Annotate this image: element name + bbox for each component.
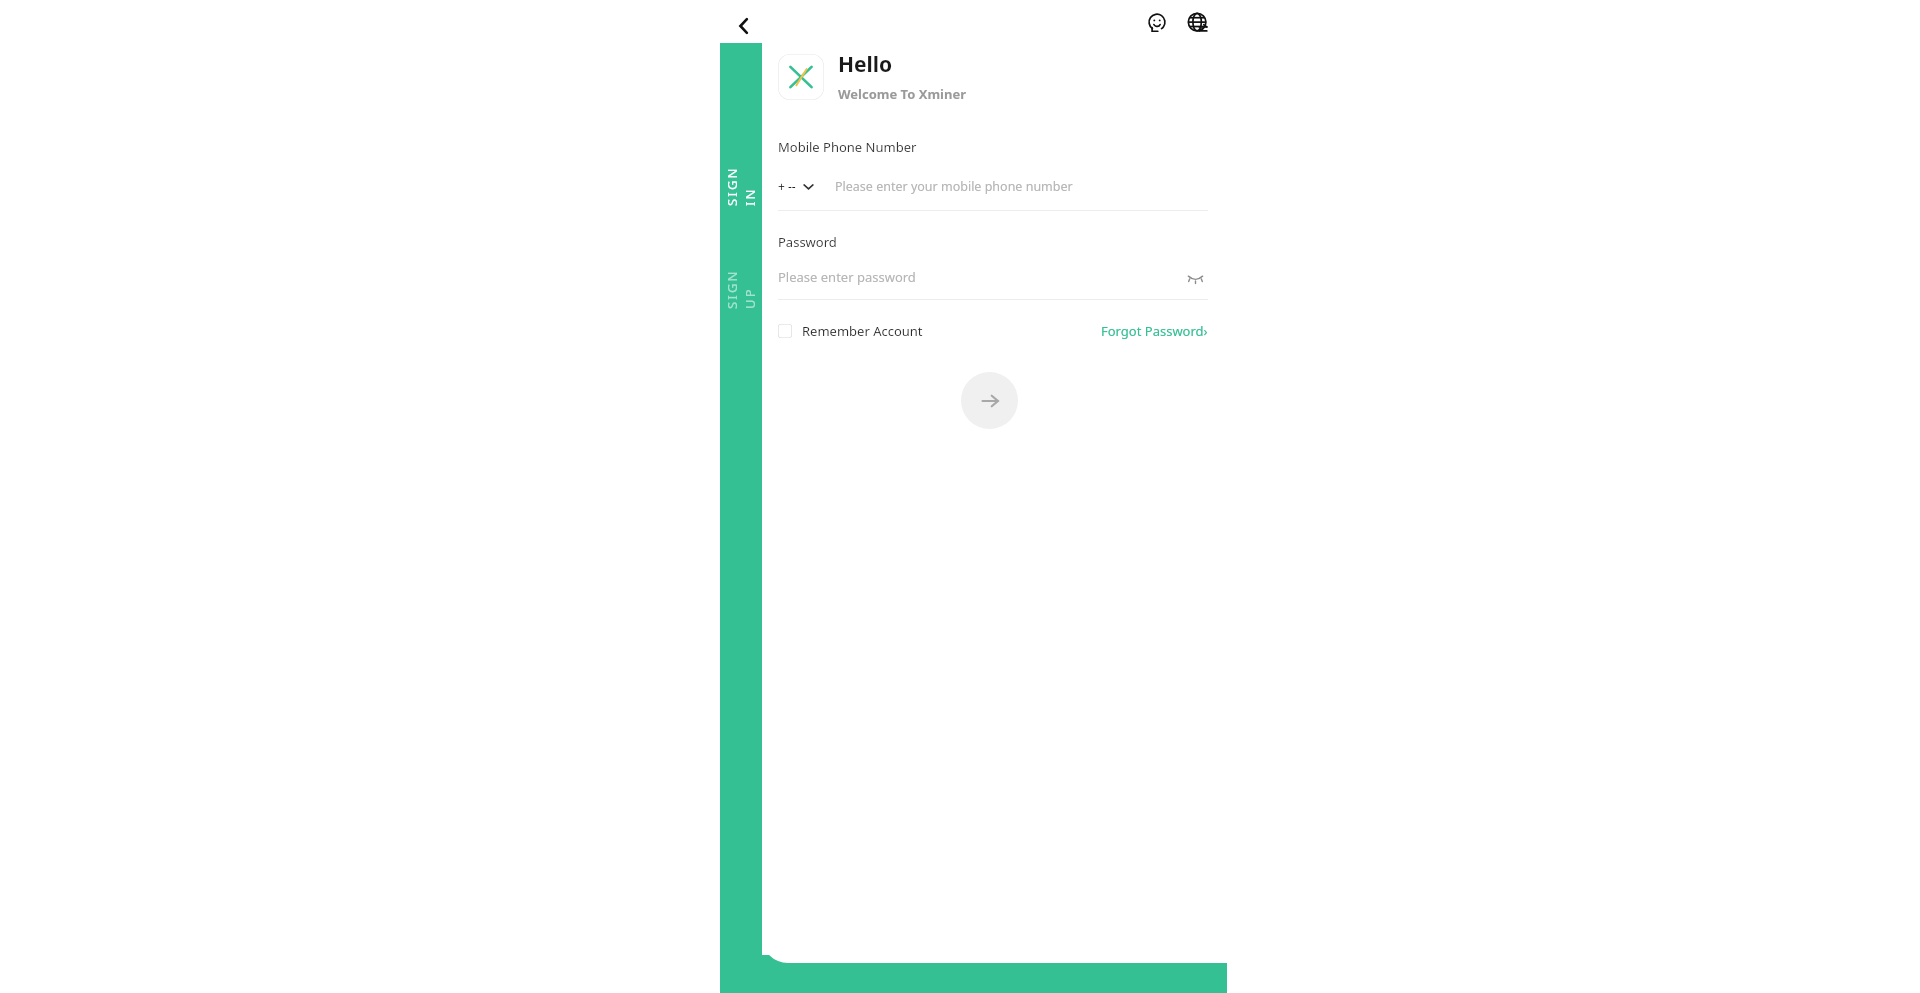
button[interactable]: Show password: [1182, 264, 1208, 290]
button[interactable]: SIGN UP: [720, 238, 762, 338]
button[interactable]: Back: [726, 8, 762, 44]
button[interactable]: Remember Account: [778, 322, 923, 340]
button[interactable]: Customer support: [1140, 6, 1174, 40]
staticText: + --: [778, 178, 796, 194]
staticText: Remember Account: [802, 322, 923, 340]
staticText: Mobile Phone Number: [778, 138, 917, 156]
staticText: SIGN IN: [723, 164, 759, 206]
staticText: Forgot Password›: [1101, 322, 1208, 340]
staticText: Hello: [838, 50, 893, 79]
staticText: Welcome To Xminer: [838, 85, 966, 103]
button[interactable]: Sign in: [961, 372, 1018, 429]
staticText: SIGN UP: [723, 267, 759, 309]
button[interactable]: + --: [778, 172, 1208, 200]
button[interactable]: Change language: [1181, 6, 1215, 40]
button[interactable]: SIGN IN: [720, 135, 762, 235]
staticText: Password: [778, 233, 837, 251]
button[interactable]: Forgot Password›: [1101, 322, 1208, 340]
staticText: Please enter password: [778, 268, 916, 286]
staticText: Please enter your mobile phone number: [835, 178, 1073, 195]
